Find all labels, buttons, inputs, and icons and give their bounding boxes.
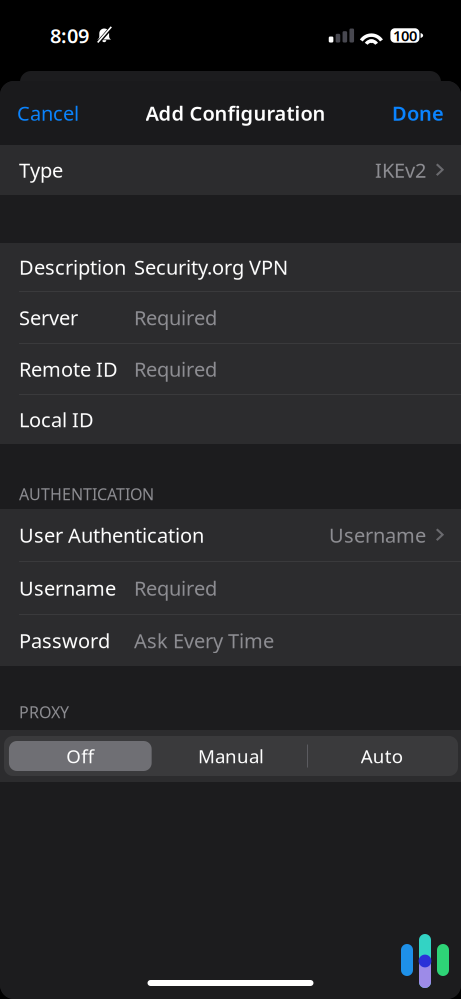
button[interactable]: Local ID (0, 395, 461, 444)
staticText: Ask Every Time (134, 627, 274, 654)
staticText: PROXY (19, 701, 69, 723)
staticText: Required (134, 575, 217, 601)
button[interactable]: Type (0, 145, 461, 195)
staticText: Done (392, 100, 444, 126)
button[interactable]: Server (0, 292, 461, 343)
button[interactable]: Description (0, 243, 461, 291)
button[interactable]: Username (0, 562, 461, 614)
staticText: Manual (198, 744, 264, 768)
button[interactable]: Remote ID (0, 344, 461, 394)
staticText: 8:09 (50, 22, 89, 49)
staticText: Required (134, 356, 217, 382)
button[interactable]: Cancel (17, 92, 79, 134)
staticText: Server (19, 304, 78, 331)
staticText: Auto (361, 744, 403, 768)
staticText: Description (19, 254, 126, 280)
staticText: Type (19, 157, 63, 183)
staticText: Off (66, 744, 94, 768)
button[interactable]: Password (0, 615, 461, 666)
staticText: Password (19, 627, 110, 654)
staticText: Local ID (19, 406, 94, 433)
button[interactable]: Auto (306, 736, 457, 776)
staticText: AUTHENTICATION (19, 483, 154, 505)
staticText: Required (134, 304, 217, 331)
staticText: Username (329, 522, 426, 548)
staticText: IKEv2 (375, 157, 426, 183)
button[interactable]: Done (392, 92, 444, 134)
staticText: Security.org VPN (134, 254, 288, 280)
staticText: Cancel (17, 100, 79, 126)
staticText: 100 (393, 26, 417, 45)
button[interactable]: Manual (156, 736, 306, 776)
staticText: Remote ID (19, 356, 118, 382)
button[interactable]: User Authentication (0, 509, 461, 561)
staticText: Add Configuration (145, 100, 325, 126)
button[interactable]: Off (5, 736, 156, 776)
staticText: Username (19, 575, 116, 601)
staticText: User Authentication (19, 522, 204, 548)
